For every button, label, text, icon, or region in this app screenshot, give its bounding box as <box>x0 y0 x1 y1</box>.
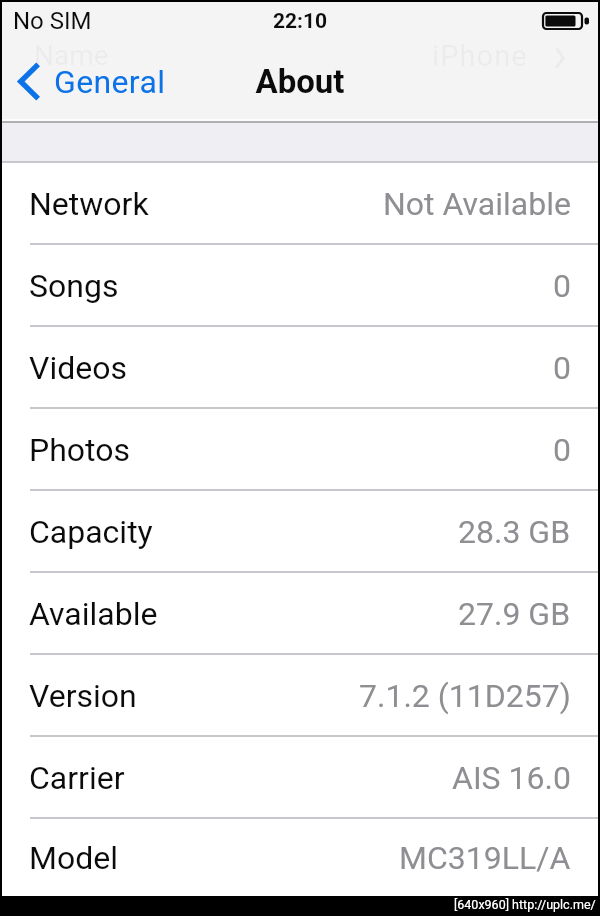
staticText: 7.1.2 (11D257) <box>359 677 571 715</box>
button[interactable]: Carrier <box>2 737 598 819</box>
staticText: 0 <box>553 267 571 305</box>
staticText: AIS 16.0 <box>452 759 571 797</box>
staticText: MC319LL/A <box>399 839 571 877</box>
staticText: 28.3 GB <box>458 513 571 551</box>
staticText: Videos <box>29 349 127 387</box>
staticText: Not Available <box>383 185 571 223</box>
staticText: Model <box>29 839 118 877</box>
staticText: Version <box>29 677 137 715</box>
button[interactable]: Capacity <box>2 491 598 573</box>
staticText: Capacity <box>29 513 153 551</box>
button[interactable]: Available <box>2 573 598 655</box>
staticText: Network <box>29 185 149 223</box>
staticText: General <box>54 63 166 101</box>
staticText: Songs <box>29 267 119 305</box>
staticText: 0 <box>553 349 571 387</box>
staticText: Photos <box>29 431 130 469</box>
staticText: [640x960] http://uplc.me/ <box>454 897 596 912</box>
staticText: 27.9 GB <box>458 595 571 633</box>
button[interactable]: Songs <box>2 245 598 327</box>
staticText: 0 <box>553 431 571 469</box>
staticText: Carrier <box>29 759 125 797</box>
staticText: About <box>255 62 345 101</box>
staticText: Available <box>29 595 158 633</box>
staticText: No SIM <box>13 7 92 35</box>
button[interactable]: Network <box>2 163 598 245</box>
button[interactable]: Version <box>2 655 598 737</box>
other: Battery <box>542 12 588 30</box>
button[interactable]: General <box>2 56 178 108</box>
button[interactable]: Photos <box>2 409 598 491</box>
button[interactable]: Model <box>2 819 598 896</box>
button[interactable]: Videos <box>2 327 598 409</box>
staticText: 22:10 <box>273 9 328 34</box>
staticText: Name <box>34 39 109 72</box>
